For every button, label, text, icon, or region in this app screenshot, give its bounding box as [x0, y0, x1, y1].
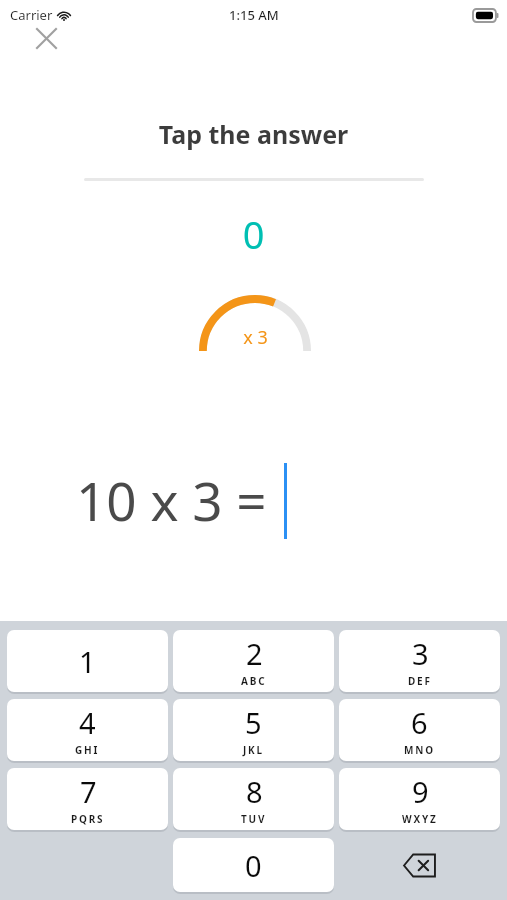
button[interactable]: 6	[339, 699, 500, 761]
staticText: Carrier	[10, 6, 53, 24]
button[interactable]: 7	[7, 768, 168, 830]
staticText: JKL	[243, 743, 264, 757]
staticText: 4	[79, 703, 96, 742]
button[interactable]: 0	[173, 838, 334, 892]
staticText: 1	[79, 642, 96, 681]
button[interactable]: 8	[173, 768, 334, 830]
staticText: ABC	[241, 674, 267, 688]
button[interactable]: 1	[7, 630, 168, 692]
staticText: TUV	[241, 812, 267, 826]
button[interactable]: 4	[7, 699, 168, 761]
staticText: 0	[245, 846, 262, 885]
staticText: 6	[411, 703, 428, 742]
staticText: 3	[412, 634, 429, 673]
staticText: 0	[0, 208, 507, 260]
staticText: 5	[245, 703, 262, 742]
staticText: 8	[246, 772, 263, 811]
staticText: PQRS	[71, 812, 105, 826]
staticText: GHI	[75, 743, 100, 757]
button[interactable]: 2	[173, 630, 334, 692]
staticText: 9	[412, 772, 429, 811]
staticText: MNO	[404, 743, 435, 757]
staticText: x 3	[243, 325, 268, 350]
staticText: DEF	[408, 674, 432, 688]
button[interactable]: 3	[339, 630, 500, 692]
staticText: 7	[80, 772, 97, 811]
staticText: WXYZ	[402, 812, 438, 826]
staticText: Tap the answer	[0, 117, 507, 151]
staticText: 2	[246, 634, 263, 673]
button[interactable]: 5	[173, 699, 334, 761]
button[interactable]: 9	[339, 768, 500, 830]
staticText: 10 x 3 =	[76, 464, 267, 536]
button[interactable]: Close	[28, 20, 64, 56]
staticText: 1:15 AM	[229, 6, 279, 24]
button[interactable]: Backspace	[339, 838, 500, 892]
